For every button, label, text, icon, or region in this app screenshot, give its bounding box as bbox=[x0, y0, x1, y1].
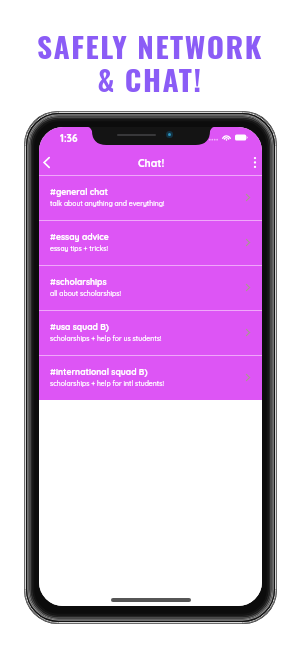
staticText: scholarships + help for intl students! bbox=[50, 379, 164, 388]
staticText: scholarships + help for us students! bbox=[50, 334, 162, 343]
staticText: 1:36 bbox=[60, 132, 78, 145]
staticText: essay tips + tricks! bbox=[50, 244, 108, 253]
button[interactable]: #essay advice bbox=[39, 221, 262, 265]
staticText: & CHAT! bbox=[97, 57, 203, 101]
button[interactable]: #international squad B) bbox=[39, 356, 262, 400]
staticText: #essay advice bbox=[50, 231, 109, 242]
staticText: SAFELY NETWORK bbox=[37, 24, 263, 68]
staticText: all about scholarships! bbox=[50, 289, 121, 298]
button[interactable]: #scholarships bbox=[39, 266, 262, 310]
button[interactable]: #usa squad B) bbox=[39, 311, 262, 355]
staticText: #scholarships bbox=[50, 276, 107, 287]
staticText: #international squad B) bbox=[50, 366, 148, 377]
button[interactable]: More options bbox=[244, 151, 262, 173]
staticText: Chat! bbox=[138, 156, 165, 169]
button[interactable]: #general chat bbox=[39, 176, 262, 220]
staticText: talk about anything and everything! bbox=[50, 199, 165, 208]
button[interactable]: Back bbox=[39, 151, 57, 173]
staticText: #general chat bbox=[50, 186, 109, 197]
staticText: #usa squad B) bbox=[50, 321, 109, 332]
